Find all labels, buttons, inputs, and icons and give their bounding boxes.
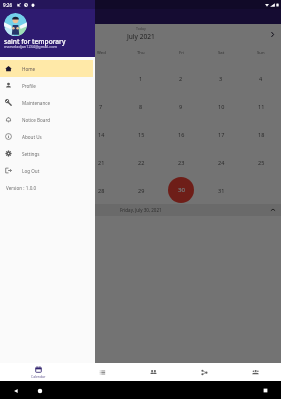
staticText: 22 <box>138 159 145 166</box>
staticText: 31 <box>218 187 225 194</box>
staticText: 10 <box>218 103 225 110</box>
button[interactable]: Staff <box>230 363 281 381</box>
staticText: Profile <box>22 83 36 89</box>
staticText: 8 <box>139 103 143 110</box>
staticText: 17 <box>218 131 225 138</box>
staticText: 18 <box>258 131 265 138</box>
staticText: 11 <box>258 103 265 110</box>
staticText: 24 <box>218 159 225 166</box>
button[interactable]: Calendar <box>0 363 77 381</box>
staticText: 21 <box>98 159 105 166</box>
staticText: 26 <box>17 187 24 194</box>
button[interactable]: 30 <box>168 177 194 203</box>
button[interactable]: Next month <box>266 28 279 41</box>
staticText: Wed <box>97 50 106 56</box>
staticText: Sun <box>257 50 265 56</box>
staticText: 29 <box>138 187 145 194</box>
staticText: Calendar <box>31 374 46 379</box>
staticText: 2 <box>179 75 183 82</box>
staticText: 4 <box>259 75 263 82</box>
staticText: 3 <box>219 75 223 82</box>
staticText: 16 <box>178 131 185 138</box>
staticText: 9 <box>179 103 183 110</box>
staticText: 1 <box>139 75 143 82</box>
staticText: Version : 1.0.0 <box>6 185 37 191</box>
button[interactable]: Home <box>0 60 93 77</box>
button[interactable]: About Us <box>0 128 93 145</box>
button[interactable]: Recents <box>260 385 271 396</box>
button[interactable]: Maintenance <box>0 94 93 111</box>
staticText: saint for temporary <box>4 37 66 46</box>
button[interactable]: Profile <box>0 77 93 94</box>
staticText: Sat <box>218 50 225 56</box>
staticText: Log Out <box>22 168 40 174</box>
staticText: 12 <box>17 131 24 138</box>
staticText: July 2021 <box>127 32 155 41</box>
button[interactable]: Notice Board <box>0 111 93 128</box>
staticText: Settings <box>22 151 40 157</box>
staticText: marveladjan1234@gmail.com <box>4 44 57 49</box>
staticText: About Us <box>22 134 42 140</box>
button[interactable]: Back <box>10 385 21 396</box>
staticText: Today <box>136 26 146 31</box>
button[interactable]: Home <box>34 385 45 396</box>
staticText: 28 <box>98 187 105 194</box>
button[interactable]: Requests <box>77 363 128 381</box>
staticText: 25 <box>258 159 265 166</box>
staticText: 15 <box>138 131 145 138</box>
staticText: Notice Board <box>22 117 51 123</box>
staticText: Maintenance <box>22 100 51 106</box>
staticText: 7 <box>99 103 103 110</box>
staticText: Home <box>22 66 36 72</box>
button[interactable]: Tenants <box>128 363 179 381</box>
staticText: Fri <box>179 50 184 56</box>
staticText: Thu <box>137 50 145 56</box>
button[interactable]: Reports <box>179 363 230 381</box>
staticText: 23 <box>178 159 185 166</box>
staticText: 9:26 <box>3 2 13 8</box>
button[interactable]: Log Out <box>0 162 93 179</box>
staticText: Friday, July 30, 2021 <box>120 207 162 213</box>
button[interactable]: Settings <box>0 145 93 162</box>
staticText: 14 <box>98 131 105 138</box>
staticText: 5 <box>19 103 23 110</box>
staticText: 30 <box>178 186 185 194</box>
